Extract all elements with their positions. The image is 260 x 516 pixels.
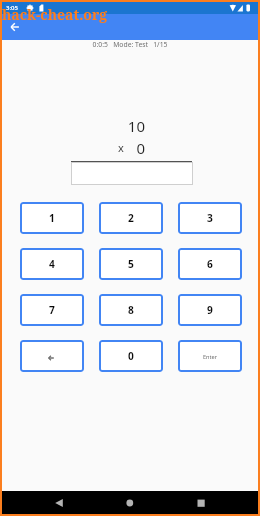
staticText: 1: [49, 211, 55, 225]
staticText: 5: [128, 257, 134, 271]
staticText: 0: [128, 349, 134, 363]
staticText: 3: [207, 211, 213, 225]
button[interactable]: 7: [20, 294, 84, 326]
button[interactable]: Enter: [178, 340, 242, 372]
button[interactable]: Answer field: [71, 162, 193, 185]
staticText: x: [118, 140, 124, 155]
staticText: 6: [207, 257, 213, 271]
button[interactable]: Back: [2, 491, 88, 514]
button[interactable]: 2: [99, 202, 163, 234]
button[interactable]: 0: [99, 340, 163, 372]
staticText: 2: [128, 211, 134, 225]
staticText: 4: [49, 257, 55, 271]
button[interactable]: Home: [88, 491, 173, 514]
button[interactable]: Recent apps: [173, 491, 258, 514]
staticText: hack-cheat.org: [2, 5, 108, 24]
staticText: 7: [49, 303, 55, 317]
button[interactable]: 9: [178, 294, 242, 326]
staticText: Enter: [203, 353, 218, 361]
staticText: 10: [2, 116, 145, 136]
staticText: 3:05: [6, 4, 18, 12]
button[interactable]: 1: [20, 202, 84, 234]
button[interactable]: Navigate up: [5, 17, 25, 37]
button[interactable]: 8: [99, 294, 163, 326]
staticText: 0: [2, 138, 145, 158]
button[interactable]: 6: [178, 248, 242, 280]
button[interactable]: 5: [99, 248, 163, 280]
button[interactable]: 3: [178, 202, 242, 234]
button[interactable]: 4: [20, 248, 84, 280]
staticText: 9: [207, 303, 213, 317]
button[interactable]: Backspace: [20, 340, 84, 372]
staticText: 8: [128, 303, 134, 317]
staticText: 0:0:5 Mode: Test 1/15: [2, 40, 258, 49]
